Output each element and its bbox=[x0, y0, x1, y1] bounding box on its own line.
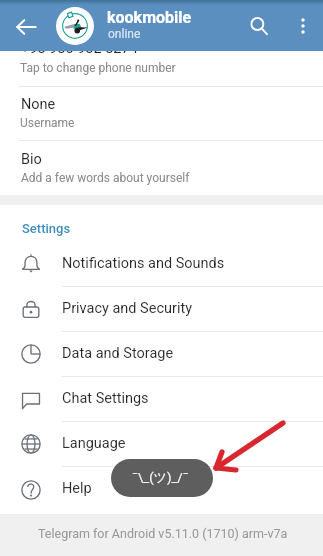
button[interactable]: Search bbox=[236, 3, 281, 48]
button[interactable]: Language bbox=[0, 421, 323, 466]
staticText: Bio bbox=[21, 151, 42, 168]
staticText: None bbox=[21, 96, 56, 113]
staticText: ¯\_(ツ)_/¯ bbox=[132, 469, 189, 485]
button[interactable]: Profile photo bbox=[56, 7, 94, 45]
staticText: Add a few words about yourself bbox=[21, 171, 190, 185]
button[interactable]: Data and Storage bbox=[0, 331, 323, 376]
staticText: Tap to change phone number bbox=[20, 61, 176, 75]
button[interactable]: Notifications and Sounds bbox=[0, 241, 323, 286]
staticText: Username bbox=[20, 116, 75, 130]
staticText: Language bbox=[62, 435, 126, 452]
staticText: Data and Storage bbox=[62, 345, 174, 362]
staticText: +98 980 982 8274 bbox=[21, 40, 138, 57]
button[interactable]: Chat Settings bbox=[0, 376, 323, 421]
staticText: kookmobile bbox=[107, 8, 192, 27]
button[interactable]: Privacy and Security bbox=[0, 286, 323, 331]
staticText: Telegram for Android v5.11.0 (1710) arm-… bbox=[38, 526, 288, 541]
button[interactable]: Help bbox=[0, 466, 323, 511]
staticText: Privacy and Security bbox=[62, 300, 193, 317]
staticText: Chat Settings bbox=[62, 390, 149, 407]
staticText: Help bbox=[62, 480, 92, 497]
staticText: online bbox=[108, 27, 141, 41]
button[interactable]: Back bbox=[2, 3, 49, 50]
staticText: Settings bbox=[22, 221, 71, 236]
button[interactable]: More options bbox=[280, 3, 323, 48]
staticText: Notifications and Sounds bbox=[62, 255, 225, 272]
